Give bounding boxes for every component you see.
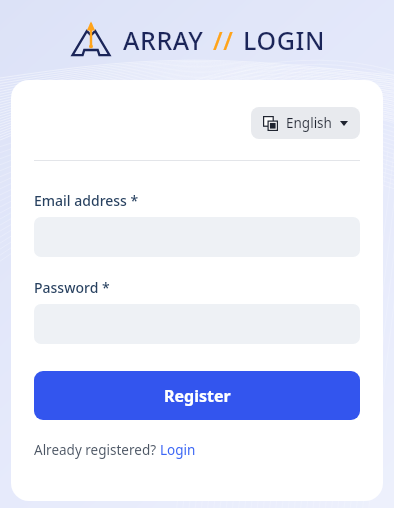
button[interactable]: Translate bbox=[251, 107, 360, 139]
staticText: LOGIN bbox=[243, 23, 325, 57]
staticText: English bbox=[286, 114, 332, 132]
staticText: ARRAY bbox=[123, 23, 204, 57]
staticText: Register bbox=[164, 385, 231, 407]
staticText: Email address * bbox=[34, 191, 139, 210]
button[interactable]: Login bbox=[160, 441, 196, 459]
staticText: // bbox=[213, 23, 234, 57]
staticText: Already registered? bbox=[34, 441, 160, 459]
other: Translate bbox=[263, 116, 278, 131]
button[interactable]: Register bbox=[34, 371, 360, 420]
staticText: Login bbox=[160, 441, 196, 459]
staticText: Password * bbox=[34, 278, 110, 297]
